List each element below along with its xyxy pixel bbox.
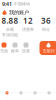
staticText: 优惠券 — [22, 27, 34, 32]
button[interactable]: 36 — [37, 15, 55, 32]
button[interactable]: 去签到 — [39, 41, 56, 55]
staticText: 充值 — [0, 48, 8, 53]
staticText: 9:41 — [2, 0, 12, 8]
staticText: 12 — [23, 15, 33, 26]
button[interactable]: 12 — [19, 15, 37, 32]
button[interactable]: · — [42, 91, 56, 100]
staticText: 余额 — [6, 27, 14, 32]
button[interactable]: · — [28, 91, 42, 100]
staticText: 常用功能 — [2, 32, 18, 37]
staticText: 8.88 — [1, 15, 18, 26]
staticText: 账单 — [11, 48, 19, 53]
button[interactable]: · — [0, 91, 14, 100]
button[interactable]: · — [14, 91, 28, 100]
button[interactable]: 充值 — [0, 42, 9, 53]
staticText: 中国移动 — [14, 1, 30, 6]
staticText: 去签到 — [42, 48, 54, 53]
button[interactable]: 我的账户 — [0, 8, 56, 17]
staticText: 36 — [41, 15, 51, 26]
button[interactable]: 8.88 — [1, 15, 19, 32]
staticText: 设置 — [22, 48, 30, 53]
staticText: · — [6, 95, 7, 100]
button[interactable]: 设置 — [20, 42, 31, 53]
button[interactable]: 账单 — [9, 42, 20, 53]
staticText: 我的账户 — [9, 9, 29, 16]
staticText: 积分 — [42, 27, 50, 32]
